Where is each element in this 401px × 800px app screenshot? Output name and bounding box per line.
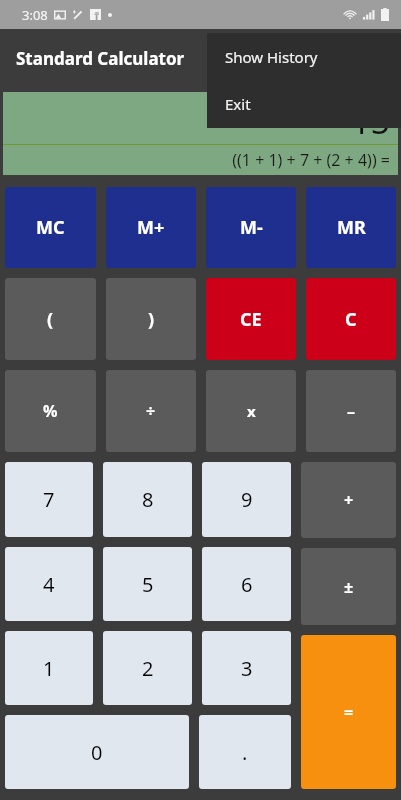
button[interactable]: x	[206, 370, 296, 452]
staticText: 6	[241, 571, 253, 598]
staticText: 8	[142, 486, 154, 513]
button[interactable]: 1	[5, 631, 93, 705]
staticText: M-	[240, 215, 263, 240]
button[interactable]: +	[301, 462, 396, 538]
staticText: 3:08	[22, 6, 48, 24]
staticText: x	[247, 401, 256, 421]
staticText: Exit	[225, 94, 251, 114]
button[interactable]: M+	[106, 187, 196, 268]
staticText: 5	[142, 571, 154, 598]
staticText: ((1 + 1) + 7 + (2 + 4)) =	[3, 149, 390, 171]
staticText: MC	[36, 215, 65, 240]
staticText: MR	[337, 215, 366, 240]
staticText: 9	[241, 486, 253, 513]
staticText: %	[43, 400, 58, 422]
button[interactable]: M-	[206, 187, 296, 268]
button[interactable]: ±	[301, 548, 396, 625]
button[interactable]: ÷	[106, 370, 196, 452]
button[interactable]: 7	[5, 462, 93, 537]
staticText: 0	[91, 739, 103, 766]
button[interactable]: 0	[5, 715, 189, 789]
button[interactable]: 9	[202, 462, 291, 537]
button[interactable]: 5	[103, 547, 192, 621]
staticText: –	[347, 400, 356, 422]
button[interactable]: .	[199, 715, 291, 789]
button[interactable]: Show History	[207, 33, 401, 80]
button[interactable]: 3	[202, 631, 291, 705]
staticText: M+	[137, 215, 165, 240]
button[interactable]: )	[106, 278, 196, 360]
staticText: 4	[43, 571, 55, 598]
button[interactable]: =	[301, 635, 396, 789]
staticText: 15	[351, 98, 390, 144]
button[interactable]: 8	[103, 462, 192, 537]
staticText: 7	[43, 486, 55, 513]
button[interactable]: CE	[206, 278, 296, 360]
staticText: +	[344, 489, 354, 511]
button[interactable]: 6	[202, 547, 291, 621]
staticText: 2	[142, 655, 154, 682]
button[interactable]: C	[306, 278, 396, 360]
button[interactable]: MC	[5, 187, 96, 268]
button[interactable]: –	[306, 370, 396, 452]
staticText: .	[242, 739, 248, 766]
staticText: 3	[241, 655, 253, 682]
button[interactable]: 2	[103, 631, 192, 705]
staticText: C	[345, 307, 357, 332]
button[interactable]: %	[5, 370, 96, 452]
staticText: )	[148, 307, 155, 332]
staticText: Standard Calculator	[16, 47, 185, 70]
staticText: CE	[240, 307, 262, 332]
staticText: ÷	[146, 400, 156, 422]
staticText: (	[47, 307, 54, 332]
staticText: Show History	[225, 47, 318, 67]
button[interactable]: (	[5, 278, 96, 360]
staticText: 1	[43, 655, 55, 682]
staticText: =	[344, 701, 354, 723]
button[interactable]: MR	[306, 187, 396, 268]
button[interactable]: 4	[5, 547, 93, 621]
button[interactable]: Exit	[207, 80, 401, 128]
staticText: ±	[344, 576, 354, 598]
